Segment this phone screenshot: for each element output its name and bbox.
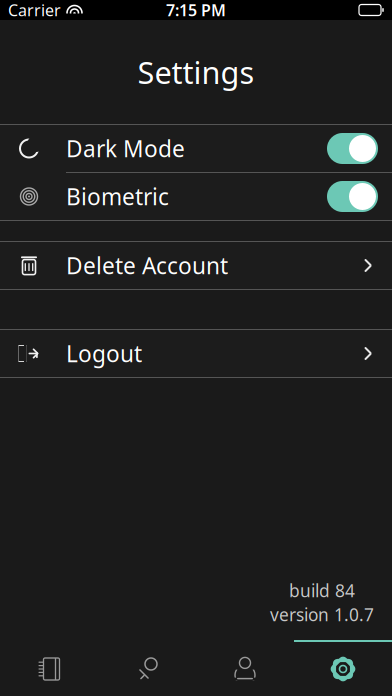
button[interactable]: Delete Account (0, 242, 392, 289)
button[interactable]: Biometric (0, 173, 392, 220)
button[interactable]: Notes (0, 640, 98, 696)
staticText: Settings (137, 52, 254, 92)
button[interactable]: Passwords (98, 640, 196, 696)
button[interactable]: Settings (294, 640, 392, 696)
staticText: Delete Account (66, 250, 228, 280)
staticText: Logout (66, 338, 142, 368)
staticText: build 84 (289, 579, 355, 602)
staticText: Dark Mode (66, 133, 185, 163)
button[interactable]: Profile (196, 640, 294, 696)
staticText: version 1.0.7 (270, 603, 374, 626)
button[interactable]: Dark Mode (0, 125, 392, 172)
button[interactable]: Logout (0, 330, 392, 377)
staticText: Biometric (66, 181, 169, 211)
staticText: Carrier (8, 0, 61, 21)
staticText: 7:15 PM (166, 0, 226, 21)
